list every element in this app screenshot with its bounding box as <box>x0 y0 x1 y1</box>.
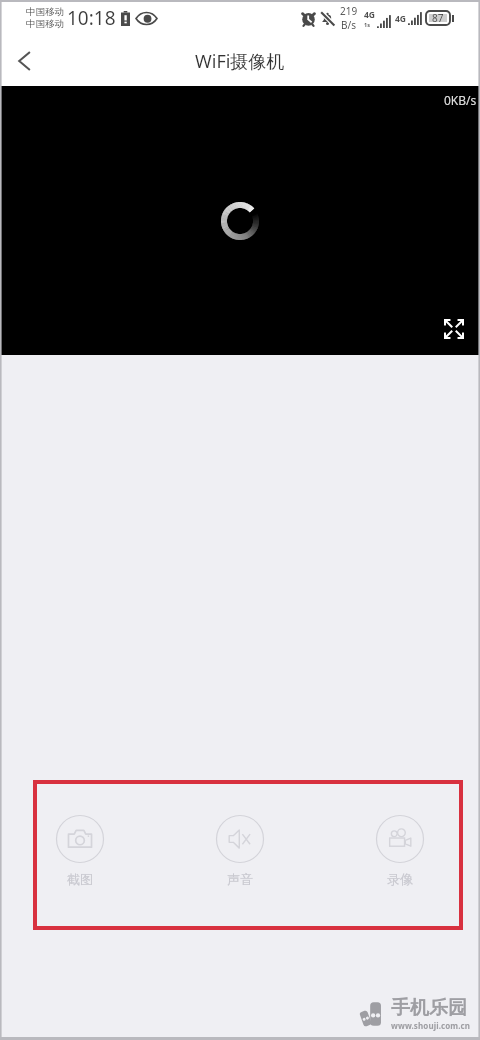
staticText: B/s <box>341 18 357 32</box>
staticText: 0KB/s <box>444 92 477 108</box>
button[interactable]: 声音 Sound <box>184 815 296 887</box>
staticText: 声音 <box>227 871 253 887</box>
staticText: 87 <box>432 11 444 25</box>
staticText: www.shouji.com.cn <box>391 1020 471 1031</box>
staticText: 4G <box>364 9 376 21</box>
button[interactable]: Fullscreen <box>436 311 472 347</box>
button[interactable]: Back <box>0 37 48 85</box>
staticText: 截图 <box>67 871 93 887</box>
staticText: 手机乐园 <box>391 996 467 1020</box>
staticText: 中国移动 <box>26 18 64 30</box>
staticText: WiFi摄像机 <box>195 49 285 74</box>
staticText: 录像 <box>387 871 413 887</box>
button[interactable]: 截图 Screenshot <box>24 815 136 887</box>
staticText: 1s <box>364 21 370 28</box>
button[interactable]: 录像 Record <box>344 815 456 887</box>
staticText: 219 <box>340 4 358 18</box>
staticText: 中国移动 <box>26 6 64 18</box>
staticText: 4G <box>395 13 407 25</box>
staticText: 10:18 <box>67 5 116 31</box>
